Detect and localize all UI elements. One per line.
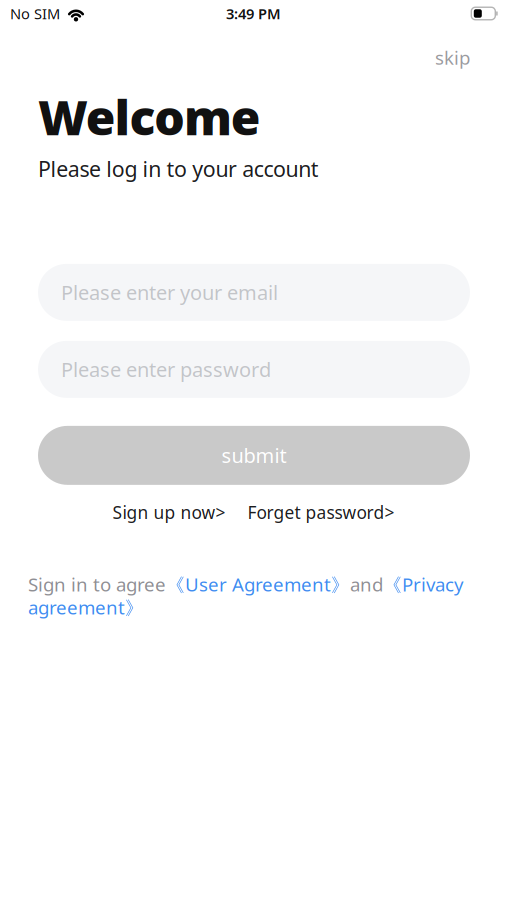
button[interactable]: Forget password> <box>247 501 394 524</box>
staticText: submit <box>221 442 286 469</box>
button[interactable]: Sign up now> <box>112 501 225 524</box>
staticText: Welcome <box>38 85 261 148</box>
staticText: Please log in to your account <box>38 154 319 183</box>
staticText: and <box>350 572 383 597</box>
staticText: Please enter password <box>61 356 271 383</box>
button[interactable]: skip <box>435 45 470 70</box>
staticText: 《User Agreement》 <box>166 572 350 597</box>
staticText: Sign up now> <box>112 501 225 524</box>
staticText: Please enter your email <box>61 279 278 306</box>
button[interactable]: 《User Agreement》 <box>166 572 350 597</box>
button[interactable]: Please enter your email <box>38 264 470 321</box>
staticText: No SIM <box>10 4 60 23</box>
staticText: agreement》 <box>28 595 144 620</box>
staticText: Sign in to agree <box>28 572 166 597</box>
staticText: 《Privacy <box>383 572 464 597</box>
button[interactable]: agreement》 <box>28 595 144 620</box>
button[interactable]: Please enter password <box>38 341 470 398</box>
staticText: 3:49 PM <box>226 4 281 23</box>
button[interactable]: 《Privacy <box>383 572 464 597</box>
staticText: Forget password> <box>247 501 394 524</box>
staticText: skip <box>435 45 470 70</box>
button[interactable]: submit <box>38 426 470 485</box>
